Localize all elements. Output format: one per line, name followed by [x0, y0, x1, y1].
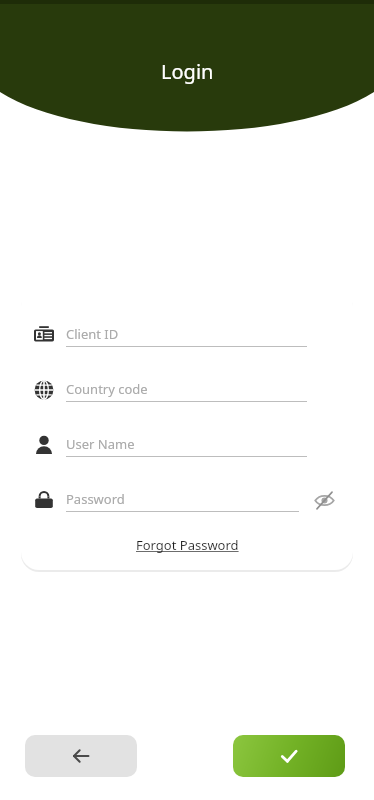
staticText: Client ID — [66, 325, 119, 343]
button[interactable]: Client ID — [21, 308, 353, 363]
button[interactable]: Password — [21, 473, 353, 528]
staticText: Password — [66, 490, 125, 508]
staticText: User Name — [66, 435, 135, 453]
staticText: Forgot Password — [136, 536, 239, 554]
staticText: Login — [161, 58, 214, 85]
staticText: Country code — [66, 380, 148, 398]
button[interactable]: Back — [25, 735, 137, 777]
button[interactable]: Forgot Password — [126, 532, 249, 558]
button[interactable]: User Name — [21, 418, 353, 473]
button[interactable]: Confirm — [233, 735, 345, 777]
button[interactable]: Country code — [21, 363, 353, 418]
button[interactable]: Show password — [309, 485, 339, 515]
